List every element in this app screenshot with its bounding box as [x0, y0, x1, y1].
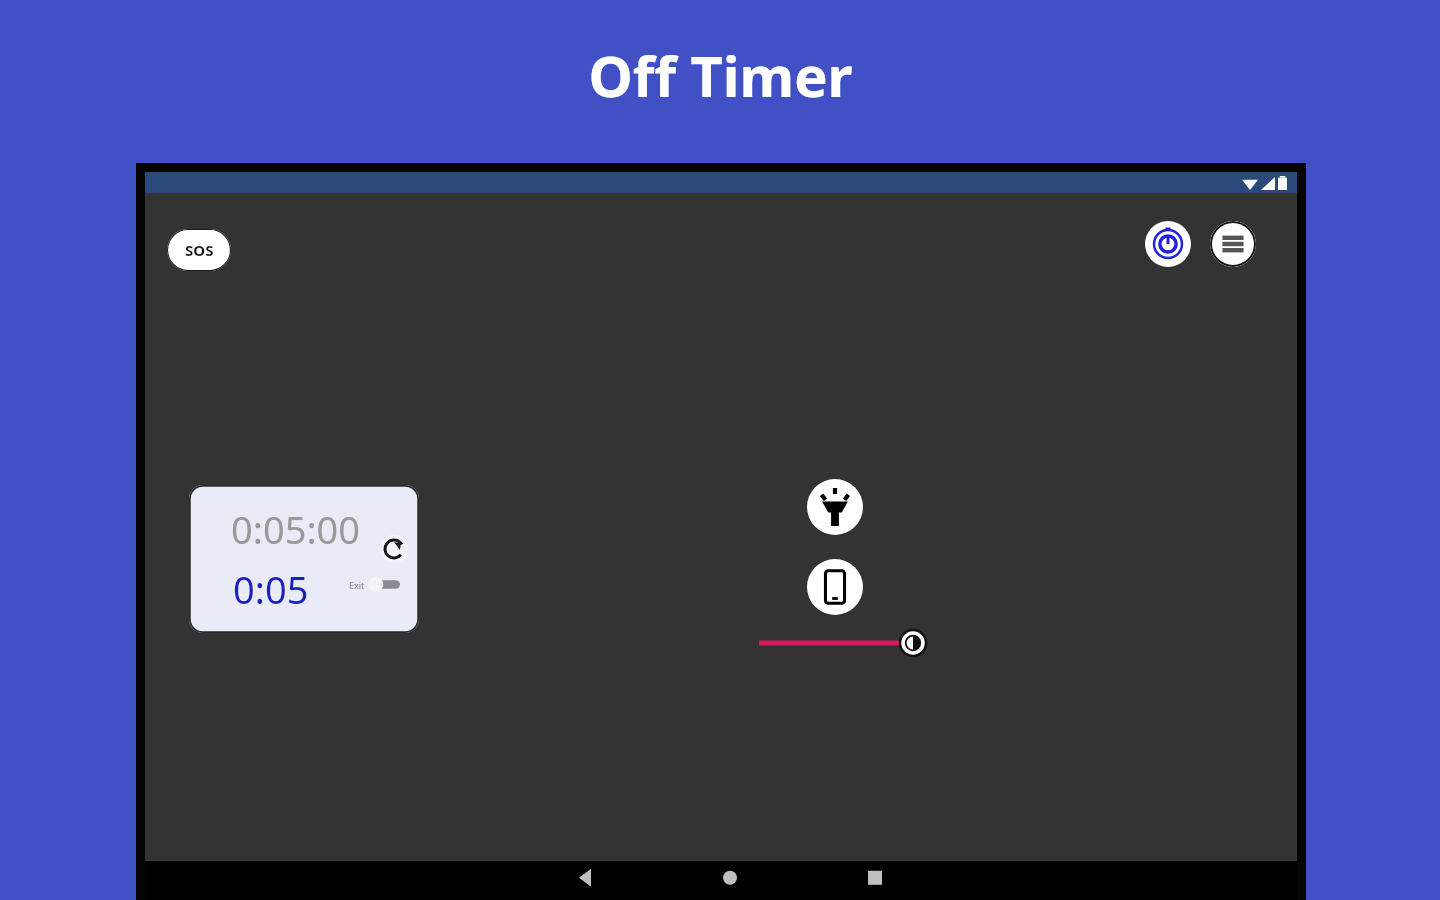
button[interactable]: Timer	[1145, 221, 1191, 267]
button[interactable]: Flashlight	[807, 479, 863, 535]
button[interactable]: 0:05:00	[189, 485, 419, 633]
button[interactable]: Screen off	[807, 559, 863, 615]
button[interactable]: Reset	[380, 535, 408, 563]
button[interactable]: Menu	[1210, 221, 1256, 267]
button[interactable]: SOS	[167, 229, 231, 271]
staticText: 0:05	[233, 563, 309, 615]
staticText: SOS	[185, 240, 214, 260]
button[interactable]	[368, 577, 400, 592]
staticText: 0:05:00	[231, 503, 361, 555]
staticText: Off Timer	[588, 37, 853, 113]
button[interactable]	[745, 625, 935, 661]
staticText: Exit	[349, 579, 365, 591]
